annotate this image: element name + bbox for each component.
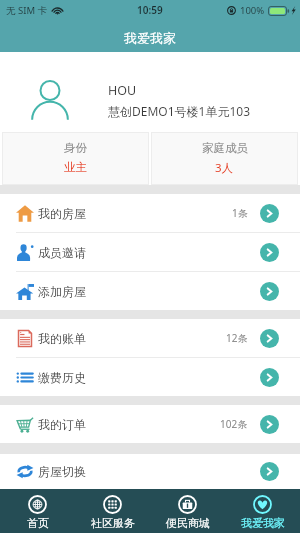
button[interactable]: 我的房屋 — [0, 194, 300, 232]
staticText: 社区服务 — [91, 516, 135, 530]
button[interactable]: 我爱我家 — [225, 489, 300, 533]
button[interactable]: 首页 — [0, 489, 75, 533]
button[interactable]: 身份 — [2, 132, 149, 185]
button[interactable]: 房屋切换 — [0, 454, 300, 489]
staticText: 慧创DEMO1号楼1单元103 — [108, 103, 251, 119]
staticText: 业主 — [64, 160, 87, 174]
staticText: 房屋切换 — [38, 464, 86, 479]
staticText: 便民商城 — [166, 516, 210, 530]
staticText: 我的房屋 — [38, 206, 86, 221]
staticText: 无 SIM 卡 — [6, 4, 47, 17]
staticText: 首页 — [27, 516, 49, 530]
button[interactable]: 我的订单 — [0, 405, 300, 443]
staticText: 成员邀请 — [38, 245, 86, 260]
staticText: 添加房屋 — [38, 284, 86, 299]
button[interactable]: 添加房屋 — [0, 272, 300, 310]
staticText: 1条 — [232, 206, 248, 220]
staticText: HOU — [108, 82, 137, 99]
staticText: 身份 — [64, 141, 87, 155]
button[interactable]: 成员邀请 — [0, 233, 300, 271]
staticText: 我爱我家 — [124, 30, 176, 46]
staticText: 我爱我家 — [241, 516, 285, 530]
button[interactable]: 缴费历史 — [0, 358, 300, 396]
staticText: 10:59 — [137, 3, 163, 17]
button[interactable]: 我的账单 — [0, 319, 300, 357]
button[interactable]: 社区服务 — [75, 489, 150, 533]
staticText: 我的订单 — [38, 417, 86, 432]
staticText: 100% — [240, 4, 265, 17]
button[interactable]: 便民商城 — [150, 489, 225, 533]
staticText: 12条 — [226, 331, 248, 345]
button[interactable]: 家庭成员 — [151, 132, 298, 185]
staticText: 3人 — [215, 160, 234, 176]
staticText: 缴费历史 — [38, 370, 86, 385]
staticText: 我的账单 — [38, 331, 86, 346]
staticText: 102条 — [220, 417, 248, 431]
staticText: 家庭成员 — [202, 141, 248, 155]
